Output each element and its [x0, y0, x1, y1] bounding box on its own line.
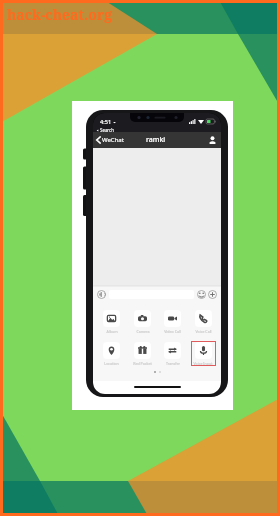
button[interactable]: Album: [98, 310, 124, 334]
staticText: ramki: [146, 135, 166, 145]
staticText: WeChat: [102, 136, 124, 144]
button[interactable]: More options: [208, 290, 217, 299]
staticText: Location: [104, 361, 119, 366]
staticText: Video Call: [164, 329, 181, 334]
button[interactable]: Contact profile: [207, 135, 217, 145]
staticText: Voice Call: [195, 329, 212, 334]
staticText: Red Packet: [133, 361, 152, 366]
button[interactable]: Voice message: [97, 290, 106, 299]
button[interactable]: Video Call: [159, 310, 185, 334]
button[interactable]: Voice Input: [190, 342, 216, 367]
staticText: Album: [106, 329, 118, 334]
staticText: Camera: [136, 329, 150, 334]
button[interactable]: Red Packet: [129, 342, 155, 366]
staticText: 4:51: [100, 118, 112, 126]
button[interactable]: Voice Call: [190, 310, 216, 334]
button[interactable]: Emoji: [197, 290, 206, 299]
staticText: Transfer: [166, 361, 180, 366]
staticText: Search: [100, 127, 114, 133]
button[interactable]: Transfer: [159, 342, 185, 366]
staticText: Voice Input: [193, 361, 213, 366]
button[interactable]: Camera: [129, 310, 155, 334]
staticText: hack-cheat.org: [7, 5, 113, 24]
button[interactable]: WeChat: [96, 136, 124, 144]
button[interactable]: Location: [98, 342, 124, 366]
